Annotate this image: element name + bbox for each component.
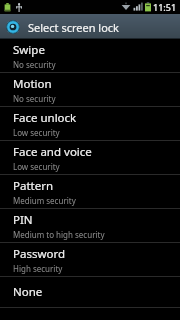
staticText: Pattern	[13, 178, 54, 194]
staticText: Select screen lock	[28, 20, 119, 35]
button[interactable]: Motion	[0, 73, 180, 106]
staticText: Face unlock	[13, 110, 77, 126]
staticText: 11:51	[153, 1, 177, 13]
button[interactable]: Password	[0, 243, 180, 276]
staticText: Low security	[13, 161, 60, 172]
staticText: Medium to high security	[13, 229, 105, 240]
button[interactable]: Swipe	[0, 39, 180, 72]
button[interactable]: PIN	[0, 209, 180, 242]
staticText: Medium security	[13, 195, 76, 206]
staticText: Face and voice	[13, 144, 92, 160]
button[interactable]: Settings	[0, 14, 180, 39]
staticText: Motion	[13, 76, 52, 92]
button[interactable]: Face unlock	[0, 107, 180, 140]
staticText: No security	[13, 59, 56, 70]
button[interactable]: Face and voice	[0, 141, 180, 174]
staticText: Low security	[13, 127, 60, 138]
other: Settings	[5, 19, 21, 35]
staticText: Swipe	[13, 42, 45, 58]
staticText: High security	[13, 263, 63, 274]
staticText: No security	[13, 93, 56, 104]
staticText: Password	[13, 246, 66, 262]
button[interactable]: Pattern	[0, 175, 180, 208]
button[interactable]: None	[0, 277, 180, 307]
staticText: None	[13, 284, 43, 300]
staticText: PIN	[13, 212, 33, 228]
